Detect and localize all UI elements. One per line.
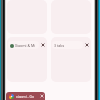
button[interactable]: Close — [84, 42, 90, 48]
staticText: xiaomi - Go — [16, 94, 40, 99]
button[interactable]: Xiaomi & Mi — [7, 37, 47, 82]
staticText: Xiaomi & Mi — [15, 43, 36, 48]
button[interactable]: Xiaomi & Mi — [8, 41, 39, 49]
other: Close — [85, 43, 89, 47]
other: Google — [9, 94, 14, 99]
staticText: 3 tabs — [54, 43, 65, 48]
other: Close — [40, 94, 44, 98]
button[interactable]: 3 tabs — [51, 37, 91, 82]
button[interactable]: 3 tabs — [52, 41, 83, 49]
button[interactable]: Close — [40, 42, 46, 48]
other: Close — [41, 43, 45, 47]
button[interactable]: Google — [6, 92, 45, 100]
